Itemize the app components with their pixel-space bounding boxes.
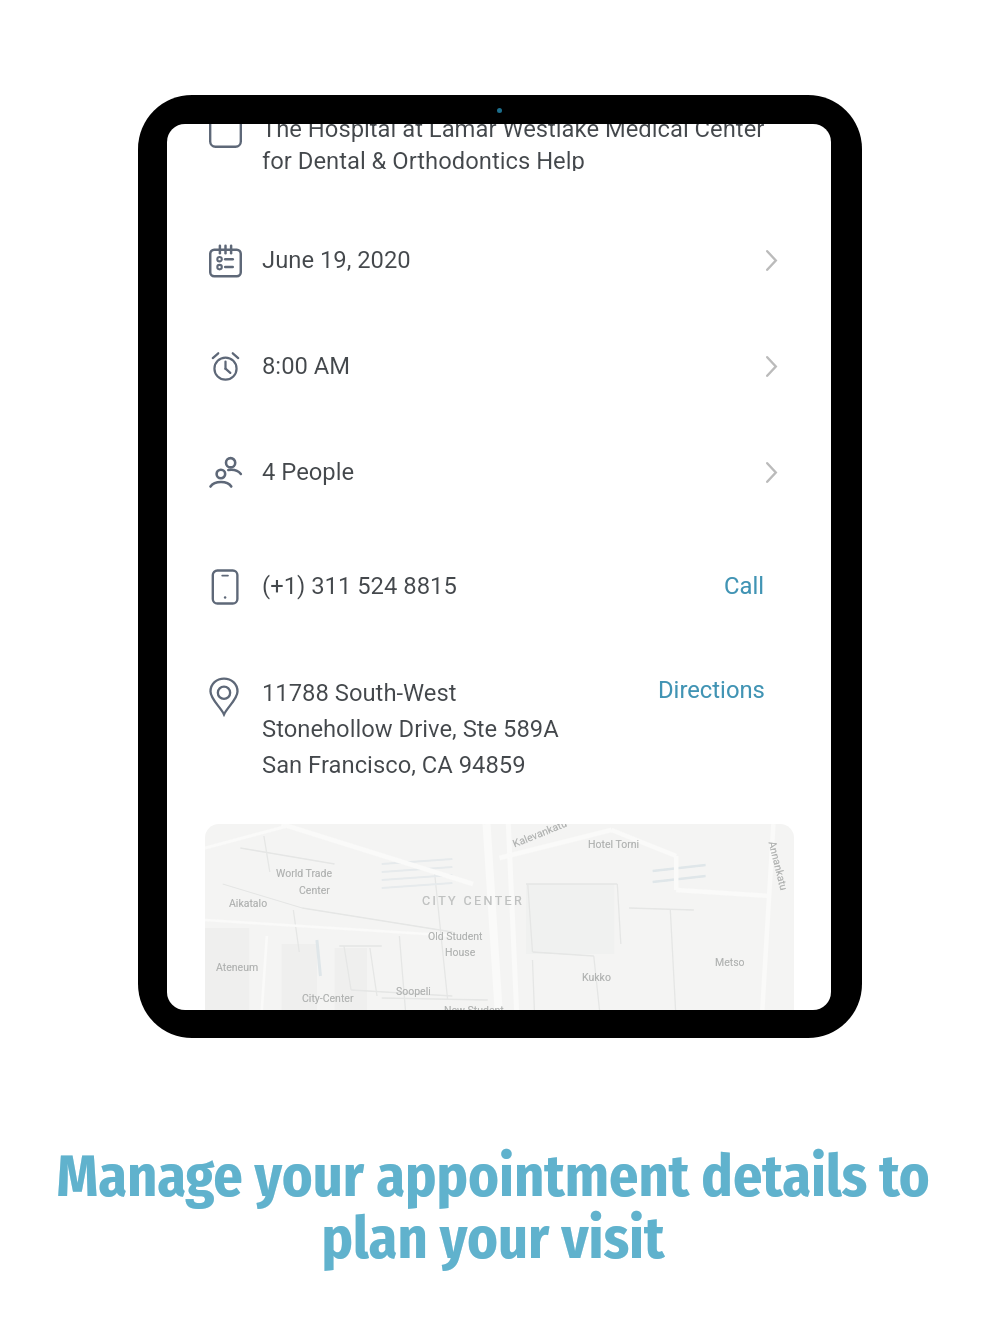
staticText: Center xyxy=(299,884,330,896)
other: Change time xyxy=(766,356,777,377)
staticText: Kukko xyxy=(582,971,611,983)
staticText: Annankatu xyxy=(766,840,790,892)
staticText: Soopeli xyxy=(396,985,431,997)
staticText: 8:00 AM xyxy=(262,352,351,380)
other: Change people xyxy=(766,462,777,483)
staticText: Call xyxy=(724,572,765,600)
button[interactable]: Map of the location xyxy=(205,824,794,1010)
button[interactable]: June 19, 2020 xyxy=(209,232,777,288)
button[interactable]: Directions xyxy=(658,676,765,704)
staticText: Hotel Torni xyxy=(588,838,640,850)
staticText: June 19, 2020 xyxy=(262,246,411,274)
button[interactable]: 11788 South-West Stonehollow Drive, Ste … xyxy=(209,678,777,788)
staticText: Aikatalo xyxy=(229,897,268,909)
staticText: CITY CENTER xyxy=(422,893,525,908)
button[interactable]: (+1) 311 524 8815 xyxy=(209,558,777,614)
staticText: New Student xyxy=(444,1004,504,1010)
staticText: 4 People xyxy=(262,458,355,486)
staticText: Ateneum xyxy=(216,961,259,973)
staticText: Directions xyxy=(658,676,765,704)
staticText: City-Center xyxy=(302,992,354,1004)
button[interactable]: Call xyxy=(724,572,765,600)
button[interactable]: 4 People xyxy=(209,444,777,500)
staticText: World Trade xyxy=(276,867,333,879)
staticText: Metso xyxy=(715,956,745,968)
staticText: 11788 South-West Stonehollow Drive, Ste … xyxy=(262,679,559,779)
staticText: The Hospital at Lamar Westlake Medical C… xyxy=(262,124,765,171)
staticText: (+1) 311 524 8815 xyxy=(262,572,457,600)
button[interactable]: The Hospital at Lamar Westlake Medical C… xyxy=(209,124,777,180)
staticText: Kalevankatu xyxy=(511,824,569,849)
staticText: Manage your appointment details to plan … xyxy=(0,1142,993,1274)
other: Change date xyxy=(766,250,777,271)
staticText: House xyxy=(445,946,476,958)
button[interactable]: 8:00 AM xyxy=(209,338,777,394)
staticText: Old Student xyxy=(428,930,483,942)
